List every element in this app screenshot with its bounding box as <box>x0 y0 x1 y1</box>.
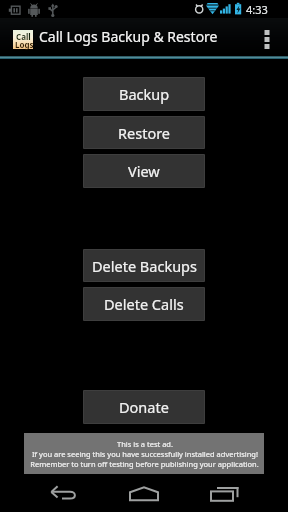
button[interactable]: Recent apps <box>201 474 249 512</box>
staticText: Logs <box>15 39 34 50</box>
staticText: If you are seeing this you have successf… <box>32 449 258 459</box>
staticText: Delete Calls <box>104 294 184 314</box>
staticText: View <box>128 161 160 181</box>
button[interactable]: More options <box>250 21 284 58</box>
button[interactable]: Backup <box>83 77 205 111</box>
staticText: This is a test ad. <box>117 439 173 449</box>
button[interactable]: Delete Backups <box>83 249 205 282</box>
button[interactable]: Delete Calls <box>83 287 205 321</box>
staticText: Backup <box>119 84 170 104</box>
button[interactable]: Back <box>40 474 88 512</box>
staticText: Delete Backups <box>92 256 197 276</box>
staticText: Restore <box>118 123 171 143</box>
staticText: Donate <box>119 397 169 417</box>
staticText: Remember to turn off testing before publ… <box>30 459 259 469</box>
button[interactable]: Restore <box>83 116 205 149</box>
button[interactable]: Donate <box>83 390 205 424</box>
button[interactable]: View <box>83 154 205 188</box>
staticText: Call <box>16 31 31 42</box>
button[interactable]: This is a test ad. <box>24 433 264 474</box>
staticText: Call Logs Backup & Restore <box>39 27 218 46</box>
button[interactable]: Home <box>120 474 168 512</box>
staticText: 4:33 <box>246 2 268 17</box>
